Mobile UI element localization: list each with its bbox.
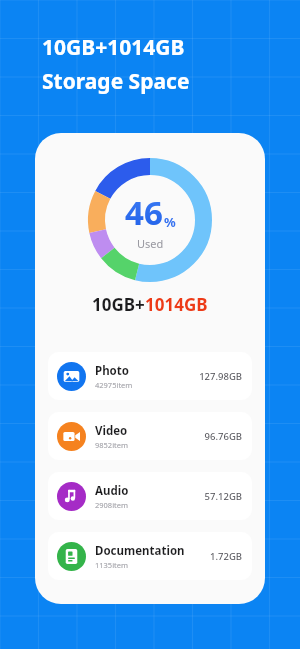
button[interactable]: Audio xyxy=(48,472,252,520)
staticText: 10GB+1014GB xyxy=(42,33,185,62)
staticText: Storage Space xyxy=(42,67,190,96)
staticText: 46 xyxy=(125,190,163,235)
staticText: 127.98GB xyxy=(186,370,242,383)
staticText: 57.12GB xyxy=(186,490,242,503)
staticText: 1135item xyxy=(95,560,129,570)
button[interactable]: Photo xyxy=(48,352,252,400)
staticText: % xyxy=(164,213,176,231)
staticText: 1.72GB xyxy=(186,550,242,563)
staticText: Documentation xyxy=(95,543,185,559)
staticText: 2908item xyxy=(95,500,129,510)
staticText: 96.76GB xyxy=(186,430,242,443)
staticText: 9852item xyxy=(95,440,129,450)
button[interactable]: Documentation xyxy=(48,532,252,580)
staticText: Used xyxy=(137,236,164,251)
staticText: 10GB+ xyxy=(92,293,145,316)
staticText: Photo xyxy=(95,363,129,379)
staticText: Video xyxy=(95,423,128,439)
staticText: 1014GB xyxy=(145,293,208,316)
staticText: 42975item xyxy=(95,380,133,390)
staticText: Audio xyxy=(95,483,129,499)
button[interactable]: Video xyxy=(48,412,252,460)
